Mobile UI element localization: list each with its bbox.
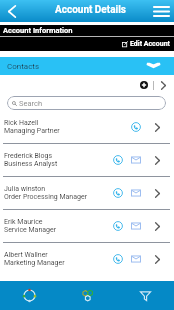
button[interactable]: Call [127,111,145,143]
staticText: Edit Account [130,40,170,48]
button[interactable]: Email [127,243,145,275]
button[interactable]: Email [127,210,145,242]
button[interactable]: Filter [116,281,174,310]
button[interactable]: Albert Wallner [0,243,174,275]
staticText: Managing Partner [4,127,60,135]
staticText: Marketing Manager [4,259,65,267]
button[interactable]: Contacts [0,57,174,75]
staticText: Erik Maurice [4,218,43,226]
staticText: Contacts [7,62,40,71]
button[interactable]: Email [127,144,145,176]
button[interactable]: Details [145,144,170,176]
staticText: Search [19,99,43,108]
button[interactable]: Locate [0,281,58,310]
button[interactable]: Edit Account [122,40,170,48]
staticText: Service Manager [4,226,57,234]
button[interactable]: Details [145,210,170,242]
button[interactable]: Details [145,177,170,209]
button[interactable]: Details [145,243,170,275]
button[interactable]: Call [109,210,127,242]
staticText: Julia winston [4,185,46,193]
button[interactable]: Erik Maurice [0,210,174,242]
button[interactable]: Call [109,144,127,176]
button[interactable]: Details [145,111,170,143]
button[interactable]: Call [109,243,127,275]
staticText: Account Details [55,4,126,16]
button[interactable]: Search [7,96,166,110]
staticText: Order Processing Manager [4,193,88,201]
button[interactable]: Menu [148,0,174,22]
staticText: Rick Hazell [4,119,39,127]
staticText: Business Analyst [4,160,58,168]
button[interactable]: Julia winston [0,177,174,209]
button[interactable]: Email [127,177,145,209]
button[interactable]: Groups [58,281,116,310]
button[interactable]: Rick Hazell [0,111,174,143]
staticText: Frederick Blogs [4,152,53,160]
staticText: Account Information [3,26,73,35]
staticText: Albert Wallner [4,251,48,259]
button[interactable]: Back [0,0,24,22]
button[interactable]: Open [155,77,171,93]
button[interactable]: Frederick Blogs [0,144,174,176]
button[interactable]: Call [109,177,127,209]
button[interactable]: Add contact [136,77,152,93]
